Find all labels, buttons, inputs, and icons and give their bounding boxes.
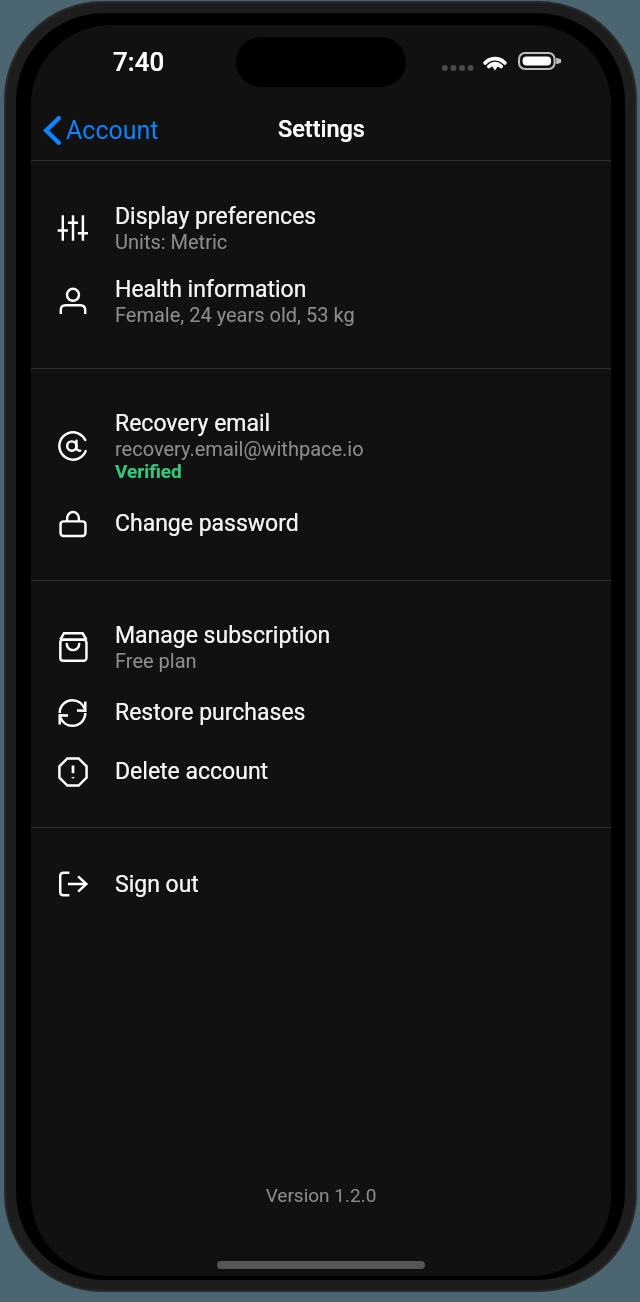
staticText: Version 1.2.0 (31, 1184, 611, 1206)
button[interactable]: Health information (31, 264, 611, 337)
staticText: Delete account (115, 758, 269, 785)
button[interactable]: Delete account (31, 742, 611, 801)
staticText: Free plan (115, 649, 197, 672)
button[interactable]: Manage subscription (31, 610, 611, 683)
button[interactable]: Sign out (31, 861, 611, 907)
button[interactable]: Recovery email (31, 392, 611, 500)
button[interactable]: Display preferences (31, 191, 611, 264)
staticText: Health information (115, 276, 307, 303)
button[interactable]: Restore purchases (31, 683, 611, 742)
staticText: Display preferences (115, 203, 317, 230)
staticText: 7:40 (113, 47, 165, 77)
button[interactable]: Change password (31, 500, 611, 546)
staticText: Manage subscription (115, 622, 331, 649)
staticText: Units: Metric (115, 230, 228, 253)
staticText: Verified (115, 460, 182, 482)
staticText: Change password (115, 510, 299, 537)
staticText: recovery.email@withpace.io (115, 437, 364, 460)
staticText: Restore purchases (115, 699, 306, 726)
staticText: Account (66, 116, 159, 145)
staticText: Settings (278, 115, 365, 143)
button[interactable]: Account (34, 106, 171, 155)
staticText: Sign out (115, 871, 199, 898)
staticText: Recovery email (115, 410, 271, 437)
staticText: Female, 24 years old, 53 kg (115, 303, 355, 326)
